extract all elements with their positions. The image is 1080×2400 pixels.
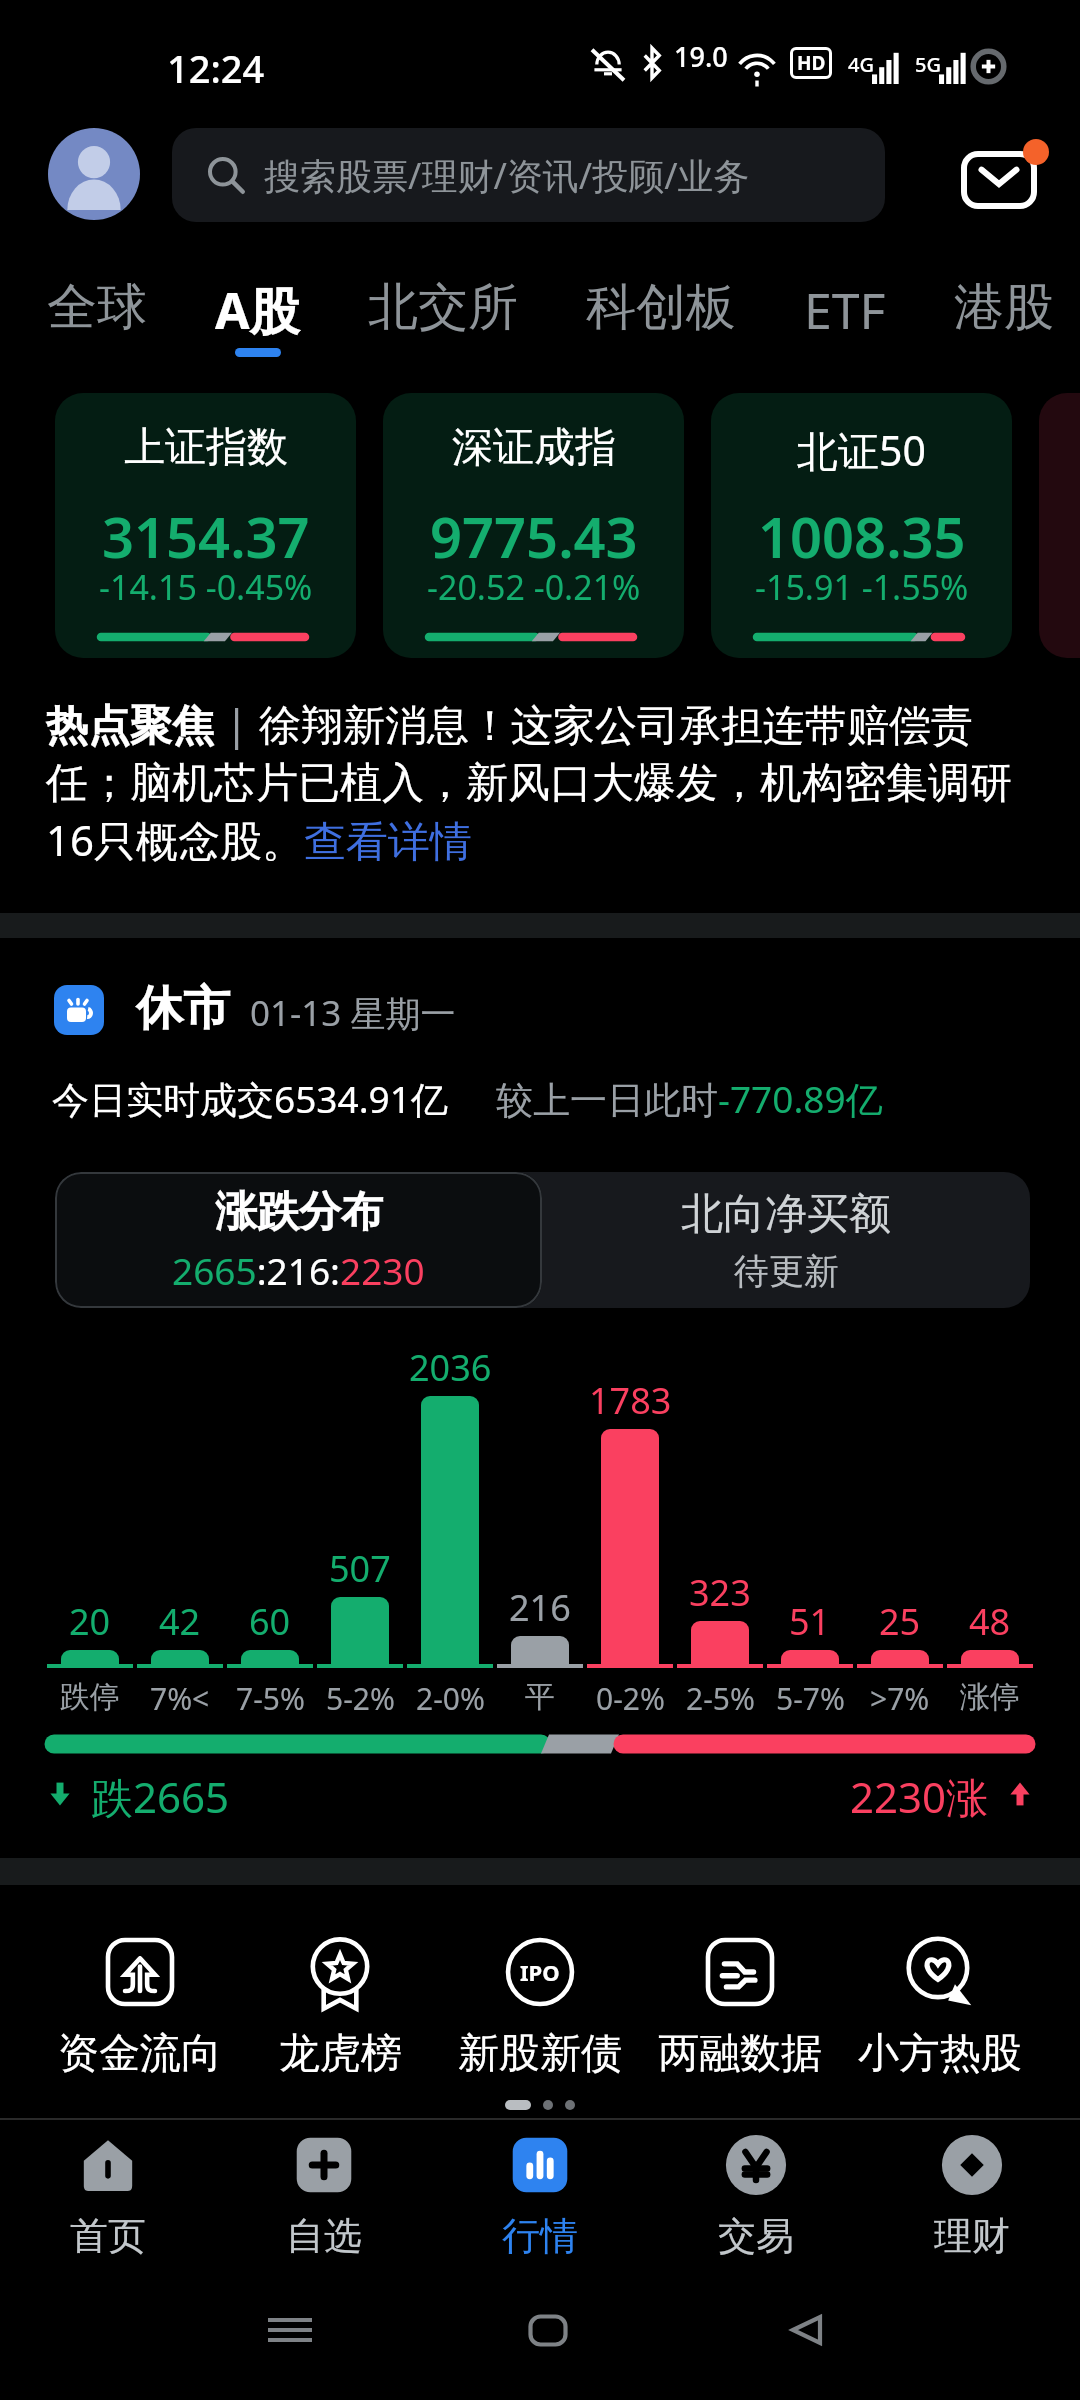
staticText: 平: [525, 1678, 555, 1716]
button[interactable]: A股: [181, 276, 334, 372]
button[interactable]: 小方热股: [840, 1938, 1040, 2080]
button[interactable]: ETF: [770, 276, 920, 372]
staticText: 资金流向: [58, 2028, 222, 2080]
staticText: 2-0%: [416, 1678, 485, 1719]
staticText: 待更新: [734, 1249, 839, 1293]
staticText: 理财: [934, 2212, 1010, 2260]
staticText: 较上一日此时-770.89亿: [496, 1073, 883, 1124]
button[interactable]: 北证50: [711, 393, 1012, 658]
staticText: 2036: [409, 1343, 492, 1392]
staticText: 涨跌分布: [215, 1186, 383, 1239]
staticText: 216: [509, 1583, 571, 1632]
staticText: 507: [329, 1544, 391, 1593]
button[interactable]: 涨跌分布: [55, 1172, 542, 1308]
staticText: 龙虎榜: [279, 2028, 402, 2080]
staticText: -14.15 -0.45%: [99, 564, 313, 610]
staticText: 两融数据: [658, 2028, 822, 2080]
button[interactable]: Recents: [265, 2305, 315, 2355]
button[interactable]: 科创板: [552, 276, 770, 372]
staticText: 小方热股: [858, 2028, 1022, 2080]
staticText: 7%<: [150, 1678, 210, 1719]
staticText: 01-13 星期一: [250, 989, 456, 1037]
button[interactable]: 全球: [13, 276, 181, 372]
staticText: 北证50: [797, 422, 926, 478]
staticText: 休市: [136, 979, 230, 1038]
button[interactable]: Back: [781, 2305, 831, 2355]
staticText: >7%: [870, 1678, 930, 1719]
staticText: 1783: [589, 1376, 672, 1425]
staticText: 涨停: [960, 1678, 1020, 1716]
staticText: 5G: [915, 51, 941, 78]
staticText: 12:24: [167, 42, 265, 94]
staticText: 跌停: [60, 1678, 120, 1716]
staticText: HD: [797, 50, 826, 76]
staticText: 热点聚焦 | 徐翔新消息！这家公司承担连带赔偿责任；脑机芯片已植入，新风口大爆发…: [46, 695, 1038, 868]
staticText: -20.52 -0.21%: [427, 564, 641, 610]
staticText: -15.91 -1.55%: [755, 564, 969, 610]
staticText: 0-2%: [596, 1678, 665, 1719]
staticText: ETF: [804, 276, 886, 344]
staticText: 1008.35: [758, 498, 966, 574]
staticText: 港股: [954, 276, 1054, 339]
staticText: 全球: [47, 276, 147, 339]
button[interactable]: 上证指数: [55, 393, 356, 658]
staticText: 今日实时成交6534.91亿: [52, 1073, 448, 1124]
staticText: 2-5%: [686, 1678, 755, 1719]
staticText: 上证指数: [124, 422, 288, 474]
staticText: 交易: [718, 2212, 794, 2260]
staticText: 3154.37: [102, 498, 310, 574]
staticText: 42: [159, 1597, 201, 1646]
button[interactable]: 理财: [864, 2134, 1080, 2260]
staticText: 跌2665: [91, 1768, 230, 1820]
staticText: 2230涨: [850, 1768, 989, 1820]
staticText: 5-2%: [326, 1678, 395, 1719]
staticText: 深证成指: [452, 422, 616, 474]
staticText: 自选: [286, 2212, 362, 2260]
staticText: 20: [69, 1597, 111, 1646]
staticText: 48: [969, 1597, 1011, 1646]
staticText: 60: [249, 1597, 291, 1646]
button[interactable]: 资金流向: [40, 1938, 240, 2080]
button[interactable]: Messages: [950, 136, 1046, 216]
button[interactable]: 北向净买额: [542, 1172, 1030, 1308]
staticText: 4G: [848, 51, 874, 78]
staticText: 9775.43: [430, 498, 638, 574]
staticText: 行情: [502, 2212, 578, 2260]
staticText: 7-5%: [236, 1678, 305, 1719]
button[interactable]: Profile: [48, 128, 140, 220]
staticText: 北交所: [368, 276, 518, 339]
button[interactable]: 热点聚焦 | 徐翔新消息！这家公司承担连带赔偿责任；脑机芯片已植入，新风口大爆发…: [0, 695, 1080, 868]
staticText: 搜索股票/理财/资讯/投顾/业务: [264, 151, 750, 200]
button[interactable]: IPO: [440, 1938, 640, 2080]
button[interactable]: 搜索股票/理财/资讯/投顾/业务: [172, 128, 885, 222]
button[interactable]: 北交所: [334, 276, 552, 372]
staticText: 5-7%: [776, 1678, 845, 1719]
button[interactable]: 行情: [432, 2134, 648, 2260]
staticText: 323: [689, 1568, 751, 1617]
staticText: A股: [215, 276, 300, 344]
button[interactable]: 港股: [920, 276, 1080, 372]
staticText: 北向净买额: [681, 1188, 891, 1241]
button[interactable]: 深证成指: [383, 393, 684, 658]
button[interactable]: 自选: [216, 2134, 432, 2260]
button[interactable]: 龙虎榜: [240, 1938, 440, 2080]
button[interactable]: Home: [523, 2305, 573, 2355]
staticText: 19.0: [674, 38, 728, 75]
staticText: 25: [879, 1597, 921, 1646]
staticText: 新股新债: [458, 2028, 622, 2080]
button[interactable]: 两融数据: [640, 1938, 840, 2080]
staticText: IPO: [520, 1957, 560, 1987]
button[interactable]: 首页: [0, 2134, 216, 2260]
staticText: 51: [789, 1597, 831, 1646]
button[interactable]: 交易: [648, 2134, 864, 2260]
staticText: 2665:216:2230: [172, 1245, 425, 1295]
staticText: 科创板: [586, 276, 736, 339]
staticText: 首页: [70, 2212, 146, 2260]
